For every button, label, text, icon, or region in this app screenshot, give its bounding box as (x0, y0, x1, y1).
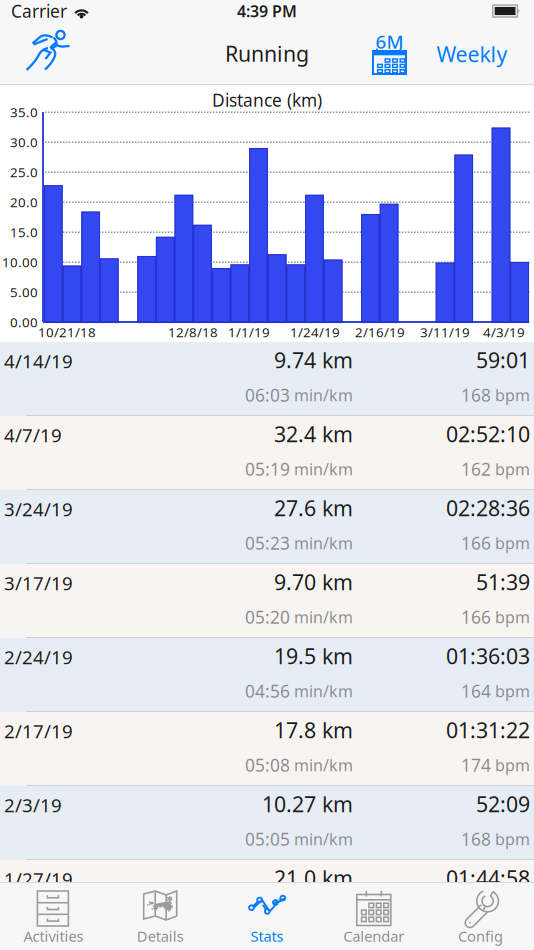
staticText: 05:20 (245, 605, 290, 628)
staticText: bpm (491, 532, 530, 554)
staticText: 166 (461, 531, 491, 554)
staticText: 0.00 (10, 313, 38, 331)
staticText: 02:52:10 (446, 420, 530, 448)
staticText: Config (458, 926, 503, 946)
button[interactable]: Calendar (320, 890, 427, 950)
staticText: 9.70 km (274, 568, 353, 596)
button[interactable]: Activities (0, 890, 107, 950)
staticText: Activities (23, 926, 83, 946)
staticText: 10.27 km (262, 790, 353, 818)
staticText: 01:44:58 (446, 864, 530, 892)
staticText: 168 (461, 827, 491, 850)
staticText: bpm (491, 828, 530, 850)
button[interactable]: Six months (372, 33, 407, 75)
button[interactable]: 2/24/19 (0, 638, 534, 712)
staticText: 1/24/19 (290, 323, 340, 341)
staticText: 4/14/19 (4, 349, 73, 373)
staticText: 35.0 (10, 103, 38, 121)
button[interactable]: 3/17/19 (0, 564, 534, 638)
staticText: 2/24/19 (4, 645, 73, 669)
staticText: min/km (290, 680, 353, 702)
staticText: 6M (375, 29, 403, 54)
button[interactable]: 2/17/19 (0, 712, 534, 786)
button[interactable]: Config (427, 890, 534, 950)
staticText: 01:36:03 (446, 642, 530, 670)
staticText: bpm (491, 458, 530, 480)
staticText: 01:31:22 (446, 716, 530, 744)
staticText: 4:39 PM (237, 0, 297, 22)
staticText: 166 (461, 605, 491, 628)
staticText: 2/16/19 (355, 323, 405, 341)
staticText: 32.4 km (274, 420, 353, 448)
staticText: 2/17/19 (4, 719, 73, 743)
staticText: 4/3/19 (483, 323, 525, 341)
staticText: 52:09 (476, 790, 530, 818)
staticText: min/km (290, 384, 353, 406)
staticText: bpm (491, 680, 530, 702)
staticText: 164 (461, 679, 491, 702)
staticText: bpm (491, 606, 530, 628)
staticText: bpm (491, 754, 530, 776)
staticText: 9.74 km (274, 346, 353, 374)
staticText: 04:56 (245, 679, 290, 702)
staticText: 5.00 (10, 283, 38, 301)
staticText: 59:01 (476, 346, 530, 374)
staticText: bpm (491, 384, 530, 406)
staticText: 3/17/19 (4, 571, 73, 595)
staticText: Weekly (436, 40, 507, 68)
staticText: 1/27/19 (4, 867, 73, 891)
staticText: 1/1/19 (228, 323, 270, 341)
staticText: 4/7/19 (4, 423, 62, 447)
staticText: 168 (461, 383, 491, 406)
staticText: 17.8 km (274, 716, 353, 744)
staticText: 3/24/19 (4, 497, 73, 521)
staticText: 174 (461, 753, 491, 776)
staticText: 19.5 km (274, 642, 353, 670)
staticText: 2/3/19 (4, 793, 62, 817)
staticText: min/km (290, 532, 353, 554)
button[interactable]: 1/27/19 (0, 860, 534, 934)
staticText: 27.6 km (274, 494, 353, 522)
staticText: 05:05 (245, 827, 290, 850)
staticText: 20.0 (10, 193, 38, 211)
staticText: 05:19 (245, 457, 290, 480)
staticText: Stats (250, 926, 283, 946)
button[interactable]: 4/14/19 (0, 342, 534, 416)
staticText: 162 (461, 457, 491, 480)
button[interactable]: Weekly (430, 29, 514, 79)
staticText: bpm (491, 902, 530, 924)
staticText: 05:08 (245, 753, 290, 776)
staticText: 10/21/18 (38, 323, 96, 341)
staticText: 02:28:36 (446, 494, 530, 522)
button[interactable]: 4/7/19 (0, 416, 534, 490)
staticText: 170 (461, 901, 491, 924)
staticText: Running (225, 39, 309, 68)
button[interactable]: 2/3/19 (0, 786, 534, 860)
staticText: 05:23 (245, 531, 290, 554)
button[interactable]: Stats (214, 890, 320, 950)
staticText: Details (137, 926, 184, 946)
staticText: 30.0 (10, 133, 38, 151)
staticText: min/km (290, 458, 353, 480)
staticText: 06:03 (245, 383, 290, 406)
staticText: Calendar (343, 926, 404, 946)
staticText: 10.00 (2, 253, 38, 271)
staticText: min/km (290, 754, 353, 776)
staticText: min/km (290, 606, 353, 628)
button[interactable]: Activity type (23, 28, 73, 76)
staticText: 12/8/18 (168, 323, 218, 341)
staticText: 05:01 (245, 901, 290, 924)
button[interactable]: 3/24/19 (0, 490, 534, 564)
staticText: 21.0 km (274, 864, 353, 892)
staticText: 25.0 (10, 163, 38, 181)
staticText: min/km (290, 828, 353, 850)
staticText: Carrier (11, 0, 67, 22)
staticText: 15.0 (10, 223, 38, 241)
staticText: 3/11/19 (420, 323, 470, 341)
staticText: 51:39 (476, 568, 530, 596)
button[interactable]: Details (107, 890, 214, 950)
staticText: Distance (km) (212, 88, 322, 111)
